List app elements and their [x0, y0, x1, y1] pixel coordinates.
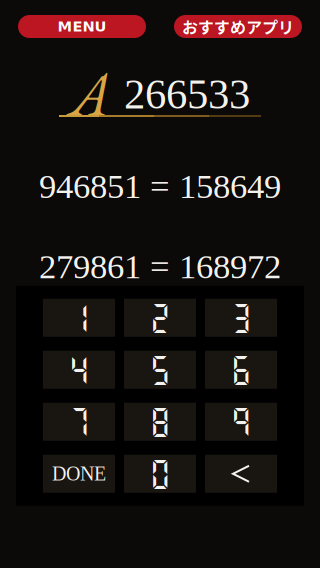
button[interactable]: 6 — [205, 351, 277, 389]
staticText: 6 — [230, 352, 252, 388]
staticText: 7 — [68, 404, 90, 440]
button[interactable]: 3 — [205, 299, 277, 337]
button[interactable]: Backspace — [205, 455, 277, 493]
button[interactable]: 4 — [43, 351, 115, 389]
button[interactable]: DONE — [43, 455, 115, 493]
button[interactable]: 2 — [124, 299, 196, 337]
button[interactable]: 0 — [124, 455, 196, 493]
button[interactable]: MENU — [18, 15, 146, 38]
button[interactable]: 1 — [43, 299, 115, 337]
button[interactable]: 8 — [124, 403, 196, 441]
staticText: 2 — [149, 300, 171, 336]
button[interactable]: 5 — [124, 351, 196, 389]
staticText: 9 — [230, 404, 252, 440]
staticText: DONE — [52, 463, 106, 485]
staticText: おすすめアプリ — [182, 15, 294, 38]
staticText: 4 — [68, 352, 90, 388]
staticText: 3 — [230, 300, 252, 336]
staticText: 279861 = 168972 — [39, 247, 281, 286]
staticText: 5 — [149, 352, 171, 388]
staticText: 946851 = 158649 — [39, 167, 281, 205]
button[interactable]: 9 — [205, 403, 277, 441]
staticText: 266533 — [124, 70, 250, 118]
button[interactable]: 7 — [43, 403, 115, 441]
staticText: MENU — [57, 18, 106, 35]
staticText: A — [70, 54, 110, 134]
button[interactable]: おすすめアプリ — [174, 15, 302, 38]
staticText: 1 — [68, 300, 90, 336]
staticText: 8 — [149, 404, 171, 440]
staticText: 0 — [149, 456, 171, 492]
